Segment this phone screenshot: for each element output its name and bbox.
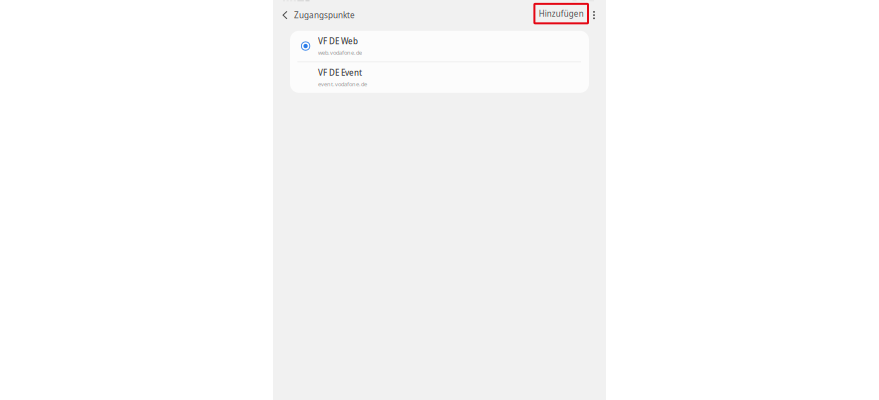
- staticText: Zugangspunkte: [294, 10, 355, 21]
- button[interactable]: Hinzufügen: [534, 4, 588, 26]
- staticText: Hinzufügen: [539, 8, 584, 19]
- button[interactable]: VF DE Event: [290, 62, 589, 93]
- button[interactable]: More options: [588, 5, 600, 25]
- staticText: VF DE Event: [318, 67, 362, 78]
- button[interactable]: Back: [277, 5, 293, 25]
- button[interactable]: VF DE Web: [290, 31, 589, 61]
- staticText: event.vodafone.de: [318, 80, 367, 88]
- staticText: web.vodafone.de: [318, 49, 362, 56]
- staticText: VF DE Web: [318, 36, 358, 47]
